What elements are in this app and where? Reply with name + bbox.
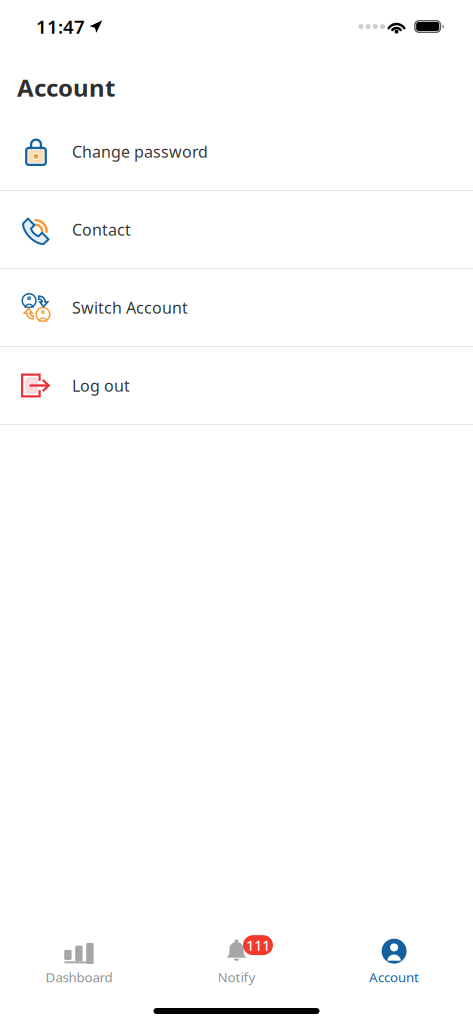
staticText: 111 [246, 935, 270, 955]
button[interactable]: Log out [0, 347, 473, 425]
staticText: Contact [72, 219, 131, 240]
staticText: Change password [72, 141, 208, 162]
staticText: 11:47 [36, 14, 85, 39]
button[interactable]: Switch Account [0, 269, 473, 347]
staticText: Log out [72, 375, 130, 396]
staticText: Switch Account [72, 297, 188, 318]
button[interactable]: Account [359, 934, 429, 988]
button[interactable]: Dashboard [44, 934, 114, 988]
button[interactable]: Change password [0, 113, 473, 191]
staticText: Account [369, 968, 419, 986]
staticText: Notify [217, 968, 255, 986]
staticText: Account [17, 72, 115, 103]
button[interactable]: Contact [0, 191, 473, 269]
staticText: Dashboard [45, 968, 112, 986]
button[interactable]: 111 [201, 934, 271, 988]
